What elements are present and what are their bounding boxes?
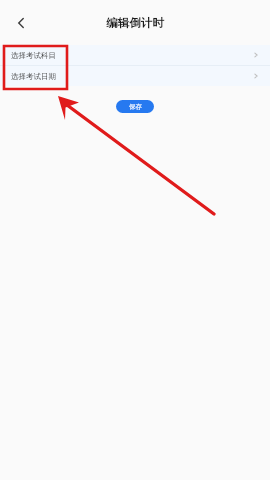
button[interactable]: 保存 [116, 100, 154, 113]
staticText: 编辑倒计时 [106, 16, 164, 30]
staticText: 选择考试日期 [11, 72, 56, 81]
button[interactable]: 选择考试科目 [0, 45, 270, 65]
button[interactable]: 选择考试日期 [0, 66, 270, 86]
staticText: 选择考试科目 [11, 51, 56, 60]
button[interactable]: Back [4, 6, 38, 40]
staticText: 保存 [129, 103, 142, 111]
